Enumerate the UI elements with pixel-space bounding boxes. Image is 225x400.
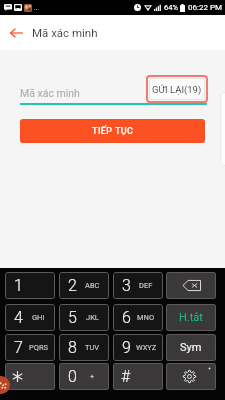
staticText: ...	[34, 4, 40, 12]
staticText: 06:22 PM	[188, 3, 222, 12]
staticText: GHI	[32, 313, 45, 322]
button[interactable]: 5	[59, 304, 109, 331]
button[interactable]: Assistive touch	[0, 376, 10, 394]
staticText: Sym	[180, 341, 202, 354]
button[interactable]: #	[113, 363, 163, 390]
staticText: ABC	[85, 281, 100, 290]
button[interactable]: 8	[59, 334, 109, 361]
staticText: 8	[68, 338, 77, 357]
button[interactable]: Sym	[166, 334, 216, 361]
staticText: 1	[14, 276, 23, 295]
staticText: #	[121, 367, 131, 386]
staticText: DEF	[139, 281, 153, 290]
staticText: 4	[14, 308, 23, 327]
button[interactable]: Back	[0, 15, 32, 50]
button[interactable]: Keyboard settings	[166, 363, 216, 390]
button[interactable]: Backspace	[166, 272, 216, 299]
staticText: MNO	[137, 313, 155, 322]
staticText: 64%	[164, 3, 178, 12]
staticText: 6	[122, 308, 131, 327]
button[interactable]: GỬI LẠI(19)	[149, 78, 205, 100]
staticText: JKL	[86, 313, 99, 322]
button[interactable]: 9	[113, 334, 163, 361]
button[interactable]: 1	[5, 272, 55, 299]
staticText: PQRS	[29, 343, 48, 352]
staticText: TIẾP TỤC	[92, 126, 134, 137]
staticText: TUV	[85, 343, 100, 352]
staticText: 5	[68, 308, 77, 327]
button[interactable]: TIẾP TỤC	[20, 119, 205, 143]
staticText: +	[90, 372, 95, 381]
staticText: 3	[122, 276, 131, 295]
staticText: Mã xác minh	[20, 87, 80, 99]
button[interactable]: 6	[113, 304, 163, 331]
button[interactable]: 7	[5, 334, 55, 361]
staticText: WXYZ	[136, 343, 157, 352]
button[interactable]: 2	[59, 272, 109, 299]
staticText: GỬI LẠI(19)	[152, 84, 202, 95]
staticText: 2	[68, 276, 77, 295]
button[interactable]: 3	[113, 272, 163, 299]
button[interactable]	[5, 363, 55, 390]
staticText: 9	[122, 338, 131, 357]
button[interactable]: H.tắt	[166, 304, 216, 331]
staticText: Mã xác minh	[32, 26, 98, 39]
button[interactable]: 4	[5, 304, 55, 331]
button[interactable]: 0	[59, 363, 109, 390]
staticText: 7	[14, 338, 23, 357]
staticText: H.tắt	[179, 311, 203, 324]
staticText: 0	[68, 367, 77, 386]
